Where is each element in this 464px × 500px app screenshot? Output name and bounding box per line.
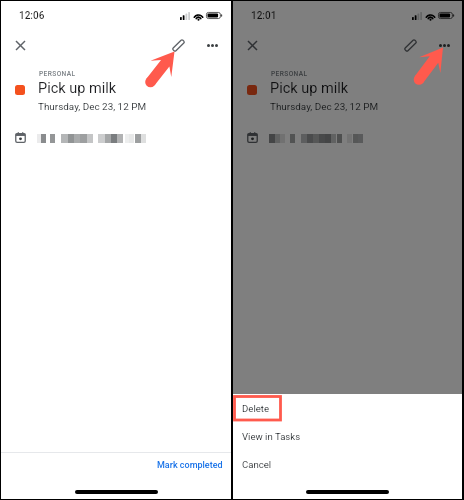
staticText: Delete	[242, 403, 270, 414]
staticText: Cancel	[242, 459, 272, 470]
staticText: Thursday, Dec 23, 12 PM	[270, 101, 379, 113]
button[interactable]: Cancel	[233, 450, 462, 478]
staticText: PERSONAL	[39, 70, 76, 78]
button[interactable]: Mark completed	[149, 455, 231, 476]
staticText: 12:01	[251, 10, 277, 22]
button[interactable]: Delete	[233, 394, 462, 422]
staticText: PERSONAL	[271, 70, 308, 78]
button[interactable]: Edit	[168, 35, 189, 56]
staticText: Mark completed	[157, 460, 223, 471]
button[interactable]: Close	[11, 36, 30, 55]
button[interactable]: View in Tasks	[233, 422, 462, 450]
staticText: Pick up milk	[38, 80, 117, 97]
button[interactable]: More options	[203, 36, 222, 55]
staticText: Thursday, Dec 23, 12 PM	[38, 101, 147, 113]
staticText: View in Tasks	[242, 431, 301, 442]
button[interactable]: Close	[243, 36, 262, 55]
button[interactable]: Edit	[400, 35, 421, 56]
staticText: Pick up milk	[270, 80, 349, 97]
button[interactable]: More options	[435, 36, 454, 55]
staticText: 12:06	[19, 10, 45, 22]
